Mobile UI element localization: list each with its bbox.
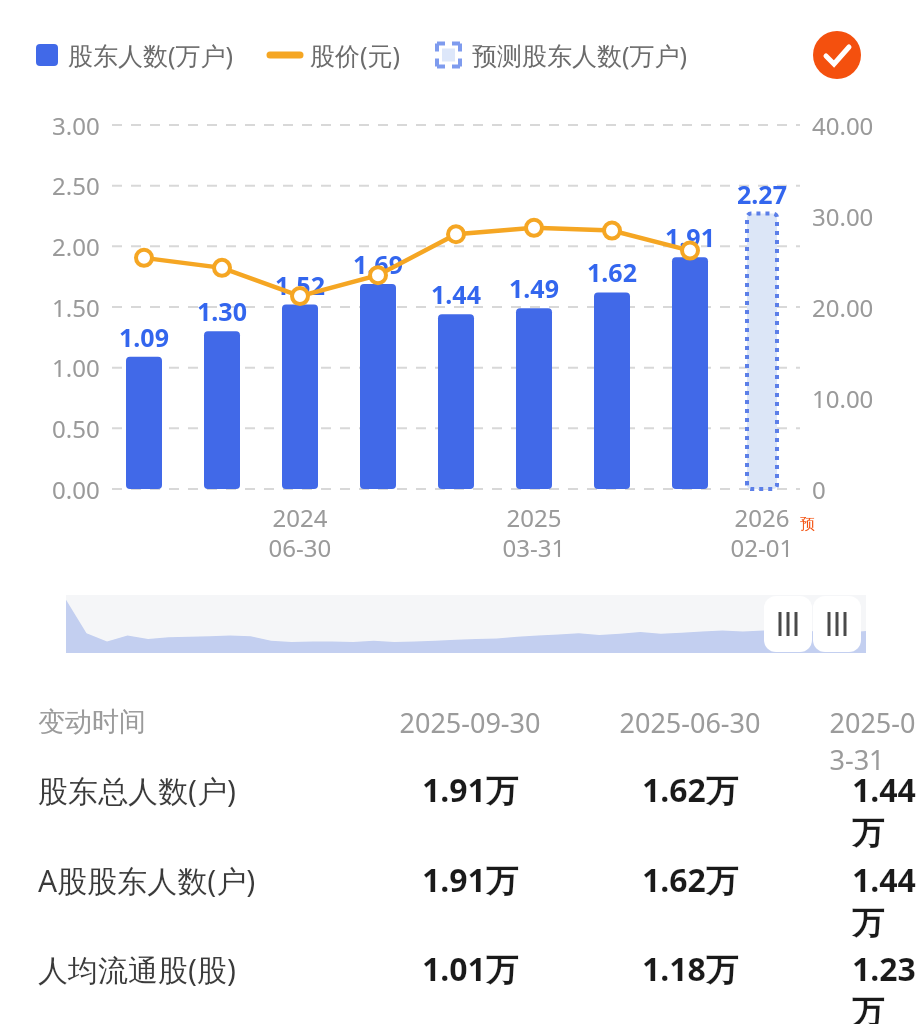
button[interactable]	[0, 750, 919, 836]
button[interactable]: 确认	[813, 31, 861, 79]
button[interactable]: 股东人数图例	[30, 30, 286, 78]
button[interactable]	[0, 929, 919, 1015]
button[interactable]	[0, 840, 919, 926]
button[interactable]: 左侧缩放手柄	[764, 596, 812, 652]
button[interactable]: 右侧缩放手柄	[813, 596, 861, 652]
button[interactable]: 预测股东人数图例	[490, 30, 800, 78]
button[interactable]: 股价图例	[300, 30, 460, 78]
